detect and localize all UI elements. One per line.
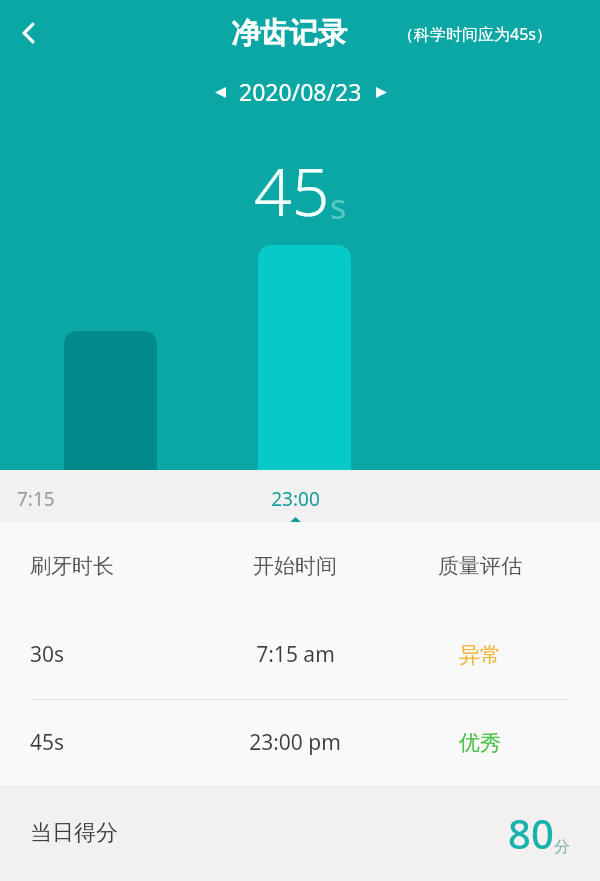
button[interactable]: Previous day (205, 77, 235, 107)
staticText: 30s (30, 640, 65, 669)
button[interactable]: 45s (0, 700, 600, 785)
staticText: 7:15 am (256, 640, 335, 669)
button[interactable]: 7:15 (17, 486, 203, 512)
staticText: 80 (508, 806, 554, 860)
button[interactable]: Next day (366, 77, 396, 107)
button[interactable]: 刷牙时长 (0, 522, 600, 610)
staticText: 异常 (459, 642, 501, 668)
staticText: 质量评估 (438, 553, 522, 579)
staticText: 当日得分 (30, 819, 118, 847)
staticText: 刷牙时长 (30, 553, 114, 579)
staticText: 优秀 (459, 730, 501, 756)
staticText: 净齿记录 (231, 15, 347, 52)
button[interactable]: 23:00 (215, 486, 375, 526)
staticText: 45 (254, 145, 330, 235)
button[interactable]: Back (6, 10, 52, 56)
staticText: 45s (30, 728, 65, 757)
staticText: 23:00 pm (249, 728, 341, 757)
staticText: 开始时间 (253, 553, 337, 579)
staticText: s (330, 183, 347, 229)
staticText: （科学时间应为45s） (398, 23, 552, 45)
staticText: 23:00 (271, 486, 320, 512)
button[interactable]: 当日得分 (0, 785, 600, 881)
staticText: 分 (554, 837, 570, 857)
button[interactable]: 30s (0, 610, 600, 699)
button[interactable]: 2020/08/23 (239, 76, 362, 107)
